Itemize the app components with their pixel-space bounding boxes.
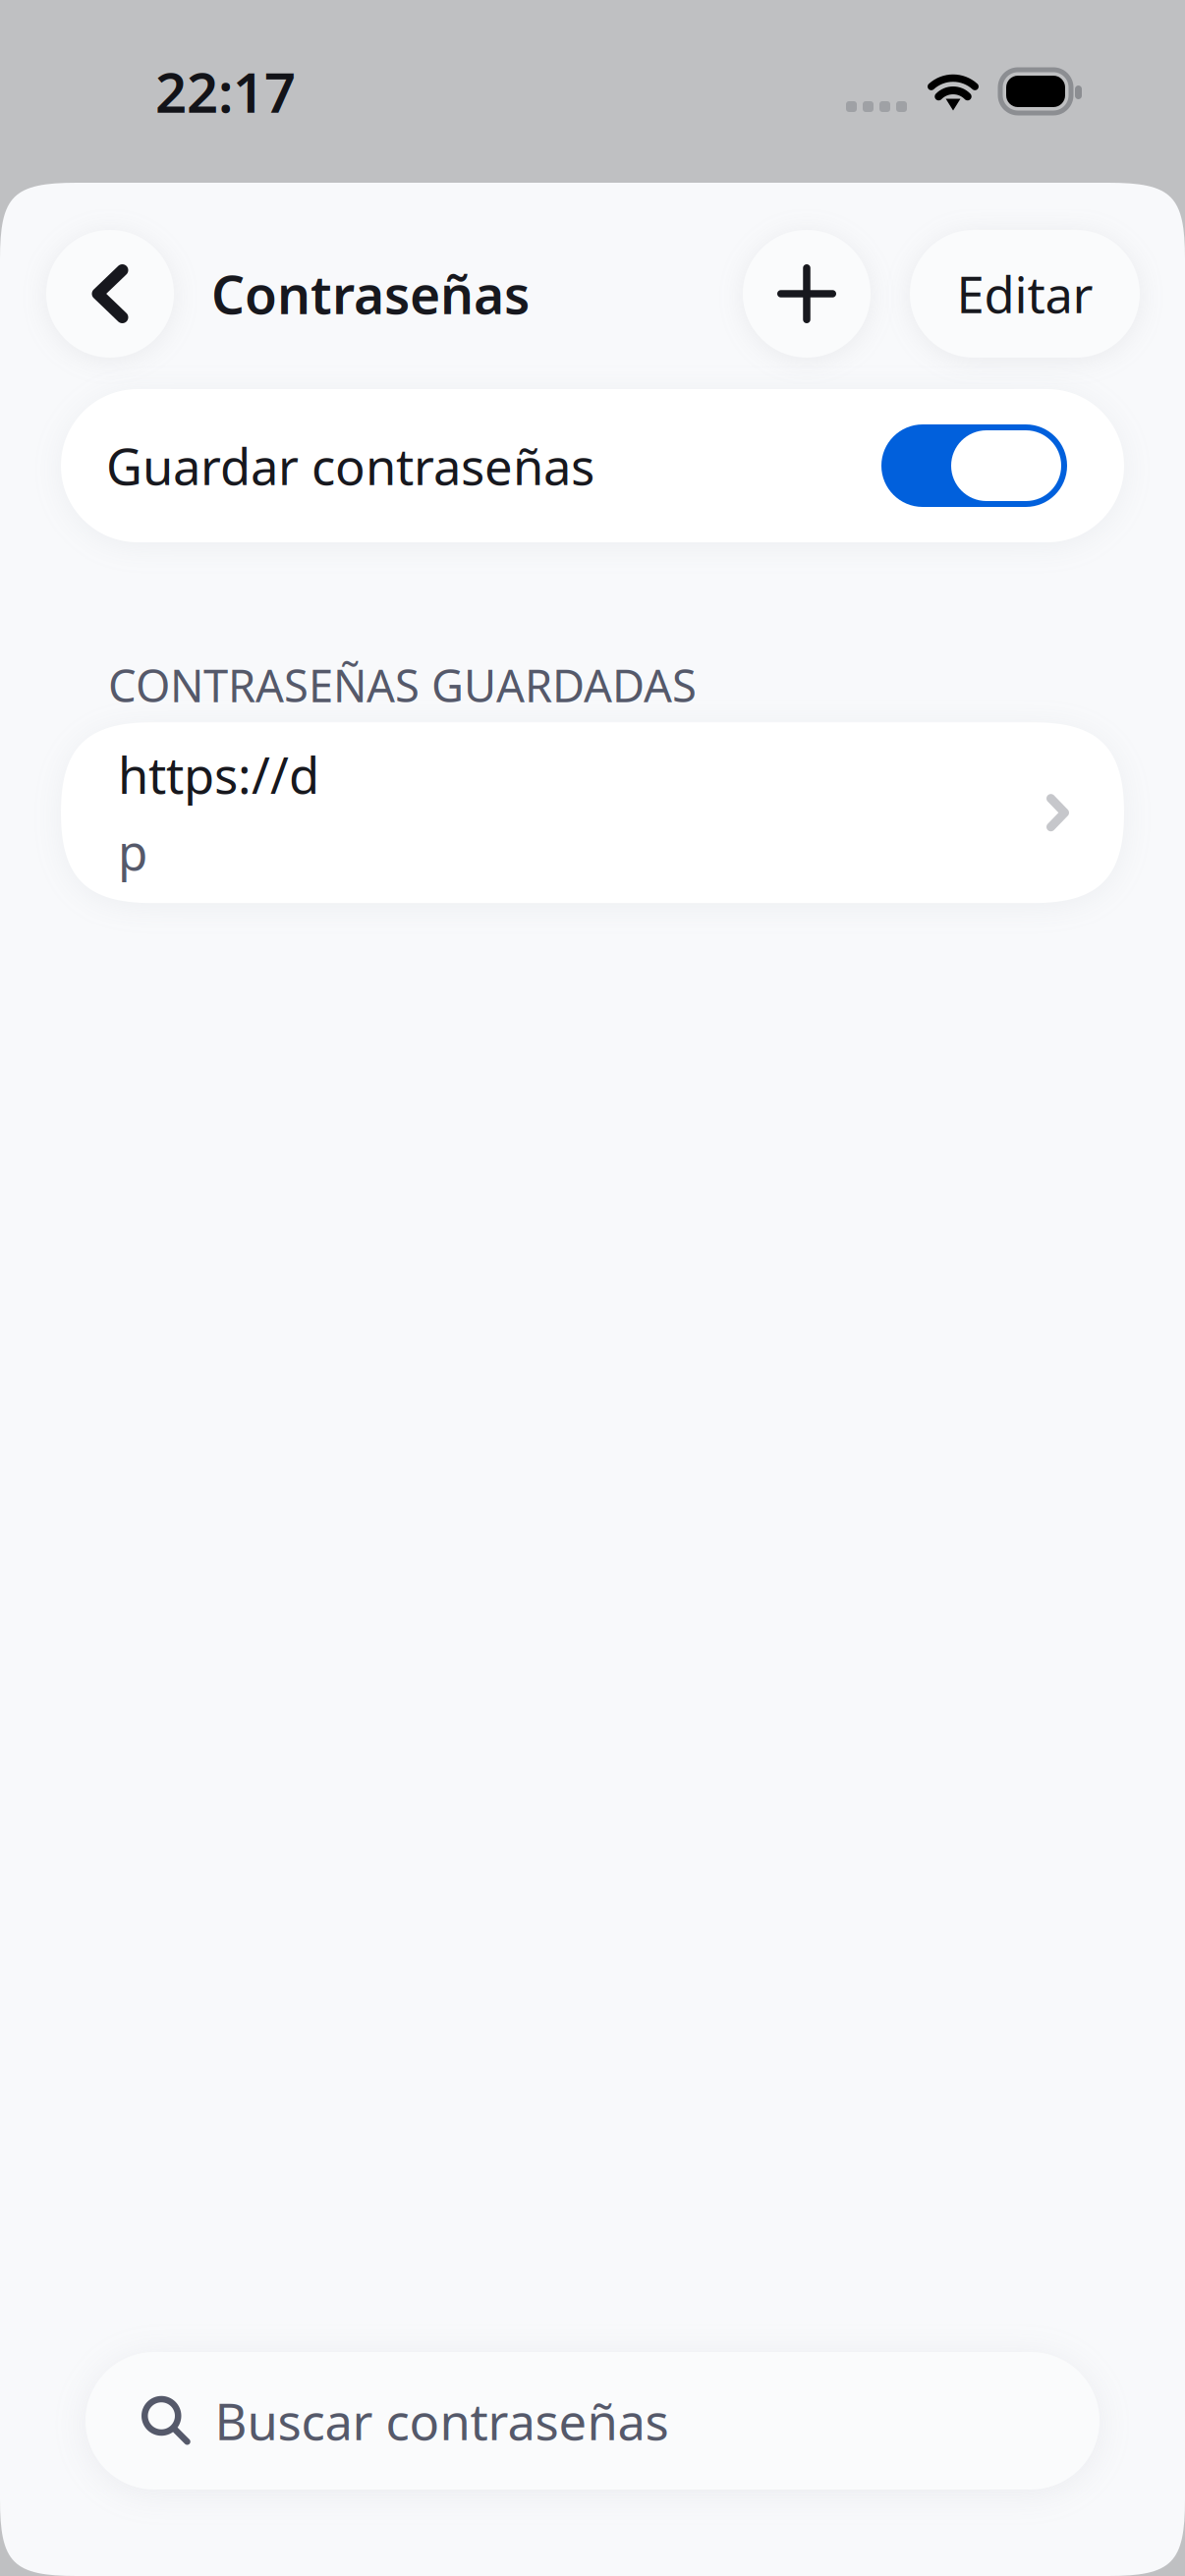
staticText: p bbox=[118, 819, 147, 884]
staticText: Editar bbox=[957, 261, 1093, 327]
button[interactable]: https://d bbox=[61, 722, 1124, 903]
staticText: 22:17 bbox=[155, 55, 296, 128]
staticText: Contraseñas bbox=[211, 259, 530, 329]
button[interactable]: Editar bbox=[910, 230, 1140, 358]
staticText: https://d bbox=[118, 742, 319, 808]
button[interactable]: Back bbox=[46, 230, 174, 358]
staticText: Buscar contraseñas bbox=[215, 2388, 669, 2454]
staticText: Guardar contraseñas bbox=[106, 433, 594, 499]
button[interactable]: Buscar contraseñas bbox=[85, 2352, 1100, 2490]
button[interactable]: Guardar contraseñas bbox=[61, 389, 1124, 542]
button[interactable]: Add password bbox=[743, 230, 871, 358]
staticText: CONTRASEÑAS GUARDADAS bbox=[108, 655, 697, 714]
